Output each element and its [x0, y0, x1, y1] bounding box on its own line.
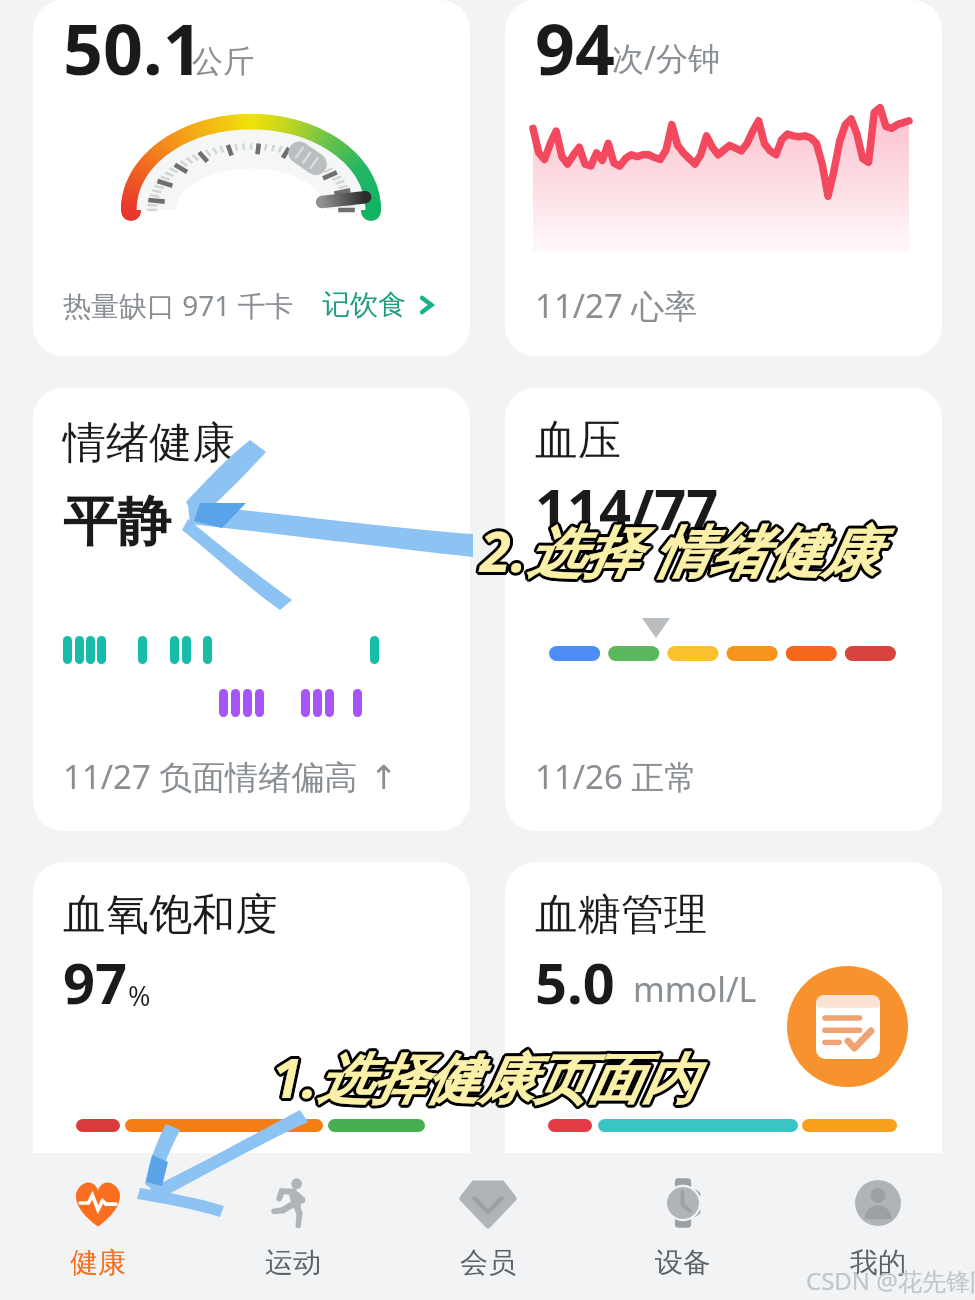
- staticText: 1.选择健康页面内: [273, 1041, 697, 1115]
- staticText: 2.选择 情绪健康: [483, 511, 881, 587]
- staticText: 1.选择健康页面内: [272, 1039, 696, 1113]
- staticText: 1.选择健康页面内: [274, 1038, 698, 1112]
- staticText: 血氧饱和度: [63, 888, 278, 942]
- staticText: 1.选择健康页面内: [272, 1038, 696, 1112]
- staticText: 2.选择 情绪健康: [480, 513, 878, 589]
- staticText: 1.选择健康页面内: [272, 1040, 696, 1114]
- staticText: 2.选择 情绪健康: [477, 512, 875, 588]
- staticText: 健康: [70, 1245, 126, 1280]
- staticText: 2.选择 情绪健康: [483, 513, 881, 589]
- staticText: 1.选择健康页面内: [271, 1038, 695, 1112]
- staticText: 2.选择 情绪健康: [479, 510, 877, 586]
- staticText: 1.选择健康页面内: [273, 1039, 697, 1113]
- staticText: 1.选择健康页面内: [273, 1040, 697, 1114]
- button[interactable]: 94: [505, 0, 942, 356]
- staticText: 2.选择 情绪健康: [481, 509, 879, 585]
- staticText: 1.选择健康页面内: [271, 1037, 695, 1111]
- staticText: 2.选择 情绪健康: [480, 510, 878, 586]
- staticText: 公斤: [192, 42, 254, 81]
- staticText: 1.选择健康页面内: [269, 1040, 693, 1114]
- staticText: 2.选择 情绪健康: [482, 514, 880, 590]
- button[interactable]: 记录血糖: [787, 966, 908, 1087]
- staticText: 11/27 负面情绪偏高: [63, 754, 358, 799]
- staticText: 2.选择 情绪健康: [479, 513, 877, 589]
- staticText: 1.选择健康页面内: [275, 1040, 699, 1114]
- staticText: 1.选择健康页面内: [270, 1041, 694, 1115]
- staticText: 2.选择 情绪健康: [478, 514, 876, 590]
- staticText: 2.选择 情绪健康: [479, 509, 877, 585]
- staticText: 2.选择 情绪健康: [482, 510, 880, 586]
- button[interactable]: 会员: [390, 1153, 585, 1300]
- staticText: 2.选择 情绪健康: [479, 511, 877, 587]
- staticText: 1.选择健康页面内: [273, 1038, 697, 1112]
- staticText: 我的: [850, 1245, 906, 1280]
- staticText: 2.选择 情绪健康: [482, 512, 880, 588]
- staticText: 1.选择健康页面内: [270, 1040, 694, 1114]
- staticText: 1.选择健康页面内: [271, 1040, 695, 1114]
- staticText: 1.选择健康页面内: [273, 1037, 697, 1111]
- staticText: 1.选择健康页面内: [270, 1039, 694, 1113]
- staticText: 情绪健康: [63, 416, 235, 470]
- staticText: 次/分钟: [612, 36, 720, 80]
- staticText: 11/27 心率: [535, 283, 698, 328]
- button[interactable]: 血压: [505, 388, 942, 831]
- staticText: 11/26 正常: [535, 754, 698, 799]
- staticText: 1.选择健康页面内: [271, 1043, 695, 1117]
- staticText: 97: [63, 944, 128, 1020]
- staticText: 2.选择 情绪健康: [478, 510, 876, 586]
- staticText: 2.选择 情绪健康: [480, 509, 878, 585]
- staticText: 记饮食: [322, 287, 406, 322]
- staticText: 1.选择健康页面内: [275, 1041, 699, 1115]
- staticText: 2.选择 情绪健康: [480, 514, 878, 590]
- staticText: 设备: [655, 1245, 711, 1280]
- staticText: 运动: [265, 1245, 321, 1280]
- staticText: 2.选择 情绪健康: [479, 514, 877, 590]
- staticText: 2.选择 情绪健康: [480, 512, 878, 588]
- staticText: 2.选择 情绪健康: [477, 511, 875, 587]
- staticText: 1.选择健康页面内: [271, 1039, 695, 1113]
- button[interactable]: 我的: [780, 1153, 975, 1300]
- staticText: 1.选择健康页面内: [270, 1038, 694, 1112]
- button[interactable]: 健康: [0, 1153, 195, 1300]
- button[interactable]: 设备: [585, 1153, 780, 1300]
- button[interactable]: 运动: [195, 1153, 390, 1300]
- staticText: 2.选择 情绪健康: [481, 510, 879, 586]
- button[interactable]: 血糖管理: [505, 862, 942, 1153]
- button[interactable]: 血氧饱和度: [33, 862, 470, 1153]
- staticText: 1.选择健康页面内: [272, 1037, 696, 1111]
- staticText: 2.选择 情绪健康: [479, 515, 877, 591]
- staticText: 平静: [63, 488, 171, 556]
- staticText: 1.选择健康页面内: [269, 1041, 693, 1115]
- button[interactable]: 记饮食: [318, 283, 442, 326]
- staticText: 1.选择健康页面内: [270, 1042, 694, 1116]
- staticText: %: [128, 977, 151, 1014]
- staticText: 2.选择 情绪健康: [481, 515, 879, 591]
- staticText: 1.选择健康页面内: [274, 1041, 698, 1115]
- staticText: 血糖管理: [535, 888, 707, 942]
- staticText: 114/77: [535, 470, 719, 546]
- staticText: 1.选择健康页面内: [274, 1039, 698, 1113]
- staticText: 2.选择 情绪健康: [482, 511, 880, 587]
- staticText: CSDN @花先锋队长: [806, 1264, 975, 1297]
- staticText: 2.选择 情绪健康: [481, 512, 879, 588]
- staticText: 血压: [535, 414, 621, 468]
- staticText: 2.选择 情绪健康: [479, 512, 877, 588]
- staticText: 1.选择健康页面内: [275, 1039, 699, 1113]
- staticText: 2.选择 情绪健康: [481, 514, 879, 590]
- staticText: 94: [535, 0, 616, 95]
- staticText: 1.选择健康页面内: [272, 1041, 696, 1115]
- staticText: mmol/L: [633, 966, 757, 1012]
- staticText: 2.选择 情绪健康: [481, 511, 879, 587]
- button[interactable]: 50.1: [33, 0, 470, 356]
- staticText: 2.选择 情绪健康: [480, 515, 878, 591]
- staticText: 1.选择健康页面内: [274, 1040, 698, 1114]
- staticText: 1.选择健康页面内: [274, 1042, 698, 1116]
- button[interactable]: 情绪健康: [33, 388, 470, 831]
- staticText: 2.选择 情绪健康: [483, 512, 881, 588]
- staticText: 2.选择 情绪健康: [481, 513, 879, 589]
- staticText: 2.选择 情绪健康: [478, 512, 876, 588]
- staticText: 2.选择 情绪健康: [480, 511, 878, 587]
- staticText: 2.选择 情绪健康: [478, 511, 876, 587]
- staticText: 1.选择健康页面内: [271, 1042, 695, 1116]
- staticText: 热量缺口 971 千卡: [63, 286, 294, 324]
